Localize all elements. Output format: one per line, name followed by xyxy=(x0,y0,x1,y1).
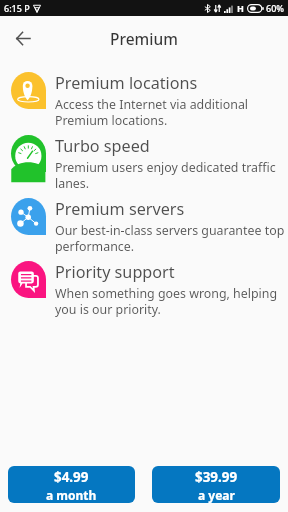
staticText: a year xyxy=(198,487,235,503)
button[interactable]: $4.99 xyxy=(8,466,135,503)
staticText: Premium servers xyxy=(55,198,185,220)
staticText: $39.99 xyxy=(195,468,238,486)
staticText: Our best-in-class servers guarantee top … xyxy=(55,222,284,255)
staticText: $4.99 xyxy=(54,468,89,486)
staticText: When something goes wrong, helping you i… xyxy=(55,285,278,318)
button[interactable]: Back xyxy=(6,22,39,55)
staticText: Premium xyxy=(110,28,178,49)
staticText: a month xyxy=(46,487,97,503)
button[interactable]: $39.99 xyxy=(152,466,280,503)
staticText: H xyxy=(237,2,244,14)
staticText: Premium users enjoy dedicated traffic la… xyxy=(55,159,276,192)
staticText: 60% xyxy=(266,2,284,14)
staticText: Priority support xyxy=(55,261,175,283)
staticText: Access the Internet via additional Premi… xyxy=(55,96,249,129)
staticText: Turbo speed xyxy=(55,135,150,157)
staticText: Premium locations xyxy=(55,72,198,94)
staticText: 6:15 P xyxy=(4,2,30,14)
